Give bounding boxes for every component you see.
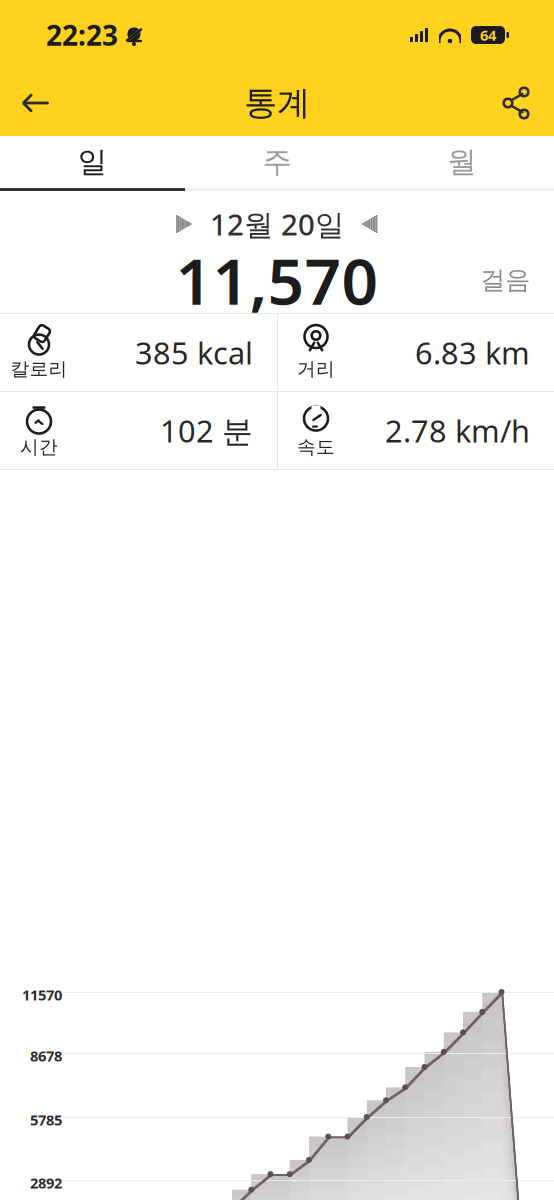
button[interactable]: 시간 (0, 392, 277, 469)
button[interactable]: 일 (0, 136, 185, 188)
button[interactable]: 칼로리 (0, 314, 277, 391)
staticText: 걸음 (480, 264, 530, 295)
button[interactable]: Share (488, 75, 544, 131)
staticText: 칼로리 (10, 357, 67, 380)
button[interactable]: 속도 (277, 392, 554, 469)
staticText: 102 분 (160, 410, 253, 451)
staticText: 11,570 (175, 237, 378, 322)
button[interactable]: Next day (347, 202, 393, 246)
staticText: 5785 (30, 1110, 62, 1129)
staticText: 일 (78, 144, 107, 180)
staticText: 거리 (297, 357, 335, 380)
button[interactable]: 주 (185, 136, 369, 188)
staticText: 2.78 km/h (385, 410, 530, 451)
staticText: 시간 (20, 435, 58, 458)
staticText: 2892 (30, 1173, 62, 1192)
staticText: 11570 (22, 985, 62, 1004)
staticText: 385 kcal (135, 332, 253, 373)
button[interactable]: 월 (369, 136, 554, 188)
staticText: 12월 20일 (210, 204, 344, 243)
staticText: 22:23 (46, 16, 118, 54)
staticText: 6.83 km (415, 332, 530, 373)
staticText: 월 (447, 144, 476, 180)
staticText: 주 (262, 144, 291, 180)
button[interactable]: Back (8, 75, 64, 131)
button[interactable]: Previous day (161, 202, 207, 246)
staticText: 통계 (244, 82, 310, 123)
staticText: 8678 (30, 1046, 62, 1065)
button[interactable]: 거리 (277, 314, 554, 391)
staticText: 속도 (297, 435, 335, 458)
staticText: 64 (480, 25, 496, 45)
